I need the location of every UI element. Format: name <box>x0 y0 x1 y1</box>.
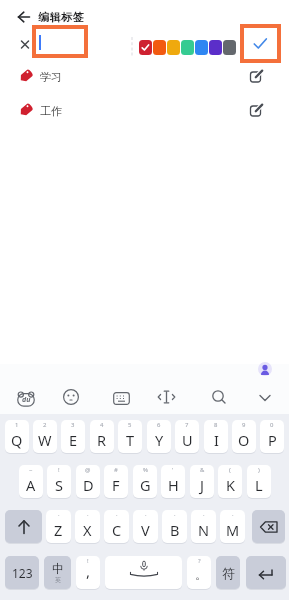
staticText: % <box>143 466 148 474</box>
button[interactable]: 7 <box>175 420 199 453</box>
button[interactable] <box>246 556 286 589</box>
staticText: # <box>114 466 118 474</box>
button[interactable] <box>32 25 88 58</box>
button[interactable]: · <box>104 510 129 543</box>
button[interactable]: du <box>16 390 36 408</box>
button[interactable]: 1 <box>5 420 29 453</box>
staticText: 3 <box>71 421 75 429</box>
staticText: @ <box>85 466 91 474</box>
staticText: W <box>38 430 52 450</box>
button[interactable] <box>240 24 281 63</box>
button[interactable] <box>211 389 227 405</box>
staticText: · <box>145 511 147 519</box>
staticText: · <box>58 511 60 519</box>
button[interactable]: · <box>191 510 216 543</box>
staticText: 5 <box>128 421 132 429</box>
staticText: U <box>182 430 193 450</box>
staticText: G <box>140 475 151 495</box>
button[interactable]: # <box>104 465 128 498</box>
button[interactable]: 8 <box>204 420 228 453</box>
staticText: B <box>170 520 180 540</box>
staticText: 。 <box>195 567 207 582</box>
button[interactable] <box>167 40 180 55</box>
staticText: ? <box>198 557 201 565</box>
staticText: V <box>141 520 150 540</box>
staticText: · <box>203 511 205 519</box>
staticText: K <box>226 475 235 495</box>
staticText: M <box>226 520 240 540</box>
staticText: 8 <box>214 421 218 429</box>
staticText: R <box>97 430 107 450</box>
staticText: 中 <box>52 561 64 576</box>
button[interactable] <box>157 390 176 404</box>
button[interactable] <box>139 40 152 55</box>
button[interactable]: 6 <box>147 420 171 453</box>
staticText: J <box>200 475 204 495</box>
staticText: · <box>232 511 234 519</box>
button[interactable]: ? <box>187 556 211 589</box>
button[interactable]: 3 <box>61 420 85 453</box>
button[interactable] <box>258 393 272 403</box>
staticText: 1 <box>15 421 19 429</box>
button[interactable]: & <box>190 465 214 498</box>
button[interactable]: 0 <box>260 420 284 453</box>
staticText: Z <box>54 520 63 540</box>
button[interactable]: ' <box>161 465 185 498</box>
staticText: N <box>198 520 210 540</box>
button[interactable] <box>14 9 34 25</box>
button[interactable] <box>113 392 130 405</box>
button[interactable]: 4 <box>90 420 114 453</box>
staticText: 符 <box>222 565 235 581</box>
button[interactable] <box>209 40 222 55</box>
staticText: X <box>83 520 92 540</box>
button[interactable] <box>252 510 285 543</box>
staticText: · <box>174 511 176 519</box>
button[interactable] <box>223 40 236 55</box>
staticText: ( <box>229 466 231 474</box>
button[interactable]: @ <box>76 465 100 498</box>
button[interactable]: ) <box>247 465 271 498</box>
button[interactable]: · <box>220 510 245 543</box>
button[interactable]: · <box>162 510 187 543</box>
button[interactable]: 中 <box>44 556 71 589</box>
button[interactable]: 123 <box>5 556 39 589</box>
button[interactable]: 工作 <box>0 97 289 130</box>
button[interactable]: 符 <box>216 556 240 589</box>
button[interactable]: ~ <box>19 465 43 498</box>
staticText: 2 <box>43 421 47 429</box>
button[interactable]: ! <box>47 465 71 498</box>
staticText: 0 <box>270 421 274 429</box>
button[interactable]: · <box>46 510 71 543</box>
staticText: H <box>168 475 179 495</box>
button[interactable]: · <box>133 510 158 543</box>
staticText: 7 <box>185 421 189 429</box>
staticText: Y <box>155 430 164 450</box>
button[interactable] <box>153 40 166 55</box>
button[interactable]: 2 <box>33 420 57 453</box>
staticText: 编辑标签 <box>38 10 84 24</box>
button[interactable] <box>5 510 42 543</box>
staticText: D <box>83 475 94 495</box>
staticText: ! <box>58 466 60 474</box>
button[interactable] <box>181 40 194 55</box>
staticText: · <box>116 511 118 519</box>
staticText: T <box>126 430 135 450</box>
button[interactable]: 5 <box>118 420 142 453</box>
staticText: ~ <box>29 466 33 474</box>
button[interactable]: 学习 <box>0 63 289 96</box>
button[interactable]: ( <box>218 465 242 498</box>
button[interactable] <box>63 389 79 405</box>
button[interactable]: · <box>75 510 100 543</box>
staticText: A <box>26 475 36 495</box>
button[interactable]: ! <box>76 556 100 589</box>
button[interactable] <box>195 40 208 55</box>
button[interactable] <box>105 556 182 589</box>
staticText: 学习 <box>40 70 62 84</box>
staticText: 9 <box>242 421 246 429</box>
button[interactable] <box>258 362 272 376</box>
button[interactable]: % <box>133 465 157 498</box>
staticText: ! <box>87 557 89 565</box>
button[interactable] <box>17 38 33 52</box>
button[interactable]: 9 <box>232 420 256 453</box>
staticText: I <box>214 430 219 450</box>
